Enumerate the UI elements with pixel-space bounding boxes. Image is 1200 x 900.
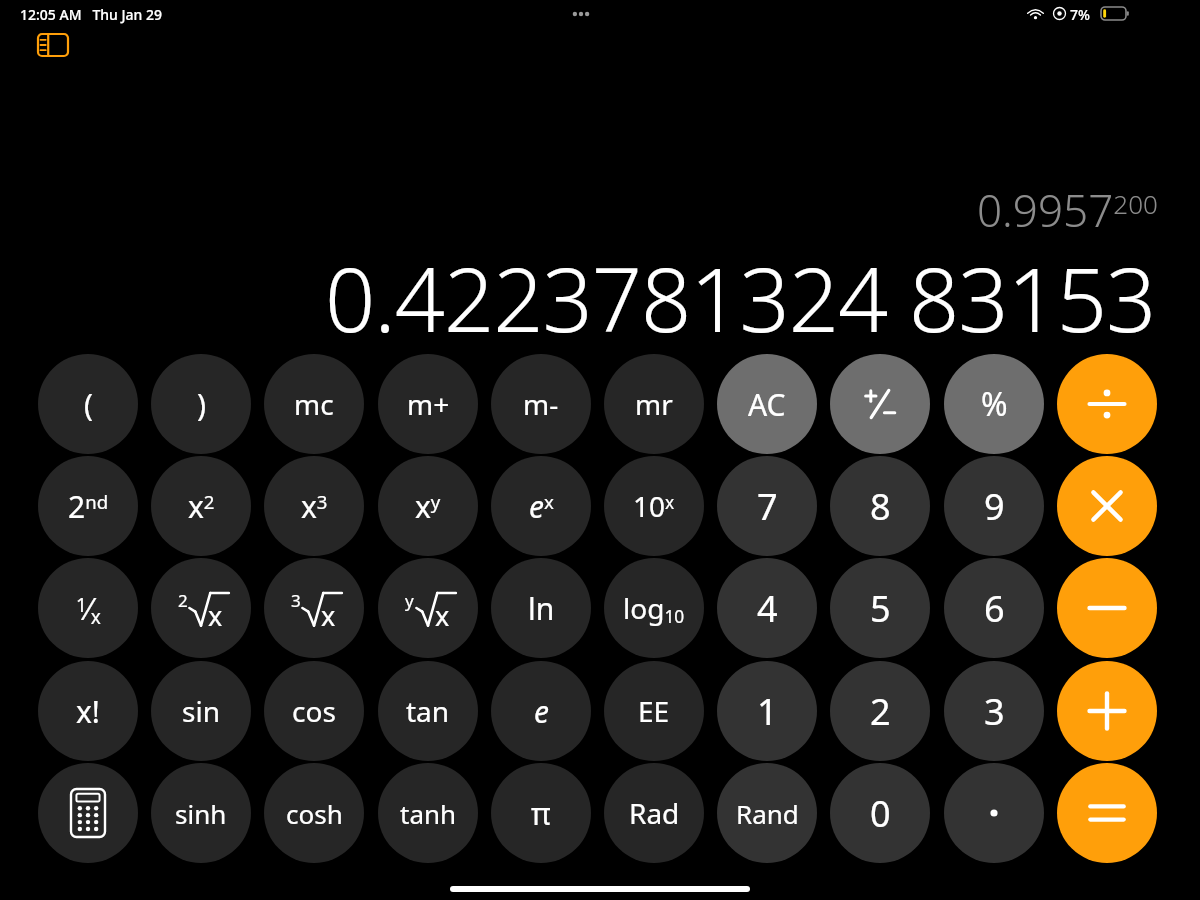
button[interactable]: One over x	[38, 558, 138, 658]
staticText: 7	[757, 482, 778, 531]
button[interactable]: Divide	[1057, 354, 1157, 454]
button[interactable]: mr	[604, 354, 704, 454]
staticText: 1	[757, 687, 778, 736]
button[interactable]: Rad	[604, 763, 704, 863]
staticText: m-	[523, 385, 559, 423]
staticText: (	[84, 384, 93, 425]
staticText: 0.9957200	[977, 180, 1158, 240]
staticText: 12:05 AM Thu Jan 29	[20, 5, 162, 24]
staticText: 5	[870, 584, 891, 633]
button[interactable]: m+	[378, 354, 478, 454]
staticText: sin	[182, 692, 220, 730]
button[interactable]: 0	[830, 763, 930, 863]
button[interactable]: 3	[944, 661, 1044, 761]
button[interactable]: (	[38, 354, 138, 454]
staticText: 2nd	[68, 486, 109, 527]
button[interactable]: 4	[717, 558, 817, 658]
button[interactable]: AC	[717, 354, 817, 454]
button[interactable]: x!	[38, 661, 138, 761]
staticText: sinh	[175, 796, 227, 831]
staticText: AC	[748, 384, 786, 425]
button[interactable]: 2	[830, 661, 930, 761]
button[interactable]: ln	[491, 558, 591, 658]
staticText: 7%	[1070, 5, 1090, 24]
staticText: x3	[301, 486, 328, 527]
button[interactable]: 8	[830, 456, 930, 556]
button[interactable]: x3	[264, 456, 364, 556]
button[interactable]: 7	[717, 456, 817, 556]
staticText: 3	[291, 589, 301, 612]
staticText: xy	[415, 486, 441, 527]
staticText: Rad	[629, 794, 680, 832]
staticText: EE	[638, 692, 670, 730]
staticText: 3	[984, 687, 1005, 736]
staticText: 0	[870, 789, 891, 838]
staticText: mr	[635, 385, 673, 423]
staticText: mc	[294, 385, 334, 423]
button[interactable]: sinh	[151, 763, 251, 863]
button[interactable]: Equals	[1057, 763, 1157, 863]
staticText: π	[531, 793, 551, 834]
staticText: tan	[406, 692, 450, 730]
staticText: )	[197, 384, 206, 425]
staticText: tanh	[400, 796, 457, 831]
staticText: y	[405, 589, 414, 612]
staticText: x	[435, 597, 450, 634]
button[interactable]: Plus	[1057, 661, 1157, 761]
button[interactable]: Y root	[378, 558, 478, 658]
button[interactable]: Decimal point	[944, 763, 1044, 863]
staticText: log10	[623, 589, 685, 628]
button[interactable]: Basic calculator	[38, 763, 138, 863]
button[interactable]: Plus minus	[830, 354, 930, 454]
button[interactable]: 10x	[604, 456, 704, 556]
staticText: cos	[292, 692, 336, 730]
button[interactable]: Square root	[151, 558, 251, 658]
staticText: ex	[529, 486, 554, 527]
button[interactable]: 6	[944, 558, 1044, 658]
staticText: %	[981, 382, 1008, 426]
button[interactable]: 2nd	[38, 456, 138, 556]
button[interactable]: 1	[717, 661, 817, 761]
button[interactable]: 9	[944, 456, 1044, 556]
button[interactable]: Show sidebar	[36, 32, 70, 58]
staticText: 9	[984, 482, 1005, 531]
button[interactable]: Cube root	[264, 558, 364, 658]
button[interactable]: xy	[378, 456, 478, 556]
staticText: e	[534, 691, 549, 732]
staticText: 8	[870, 482, 891, 531]
staticText: x!	[76, 691, 100, 732]
staticText: m+	[407, 385, 450, 423]
staticText: 2	[178, 589, 188, 612]
button[interactable]: e	[491, 661, 591, 761]
button[interactable]: m-	[491, 354, 591, 454]
button[interactable]: Minus	[1057, 558, 1157, 658]
staticText: x2	[188, 486, 215, 527]
button[interactable]: cosh	[264, 763, 364, 863]
button[interactable]: EE	[604, 661, 704, 761]
button[interactable]: Multiply	[1057, 456, 1157, 556]
button[interactable]: sin	[151, 661, 251, 761]
button[interactable]: %	[944, 354, 1044, 454]
staticText: Rand	[736, 796, 799, 831]
button[interactable]: )	[151, 354, 251, 454]
button[interactable]: log10	[604, 558, 704, 658]
staticText: 0.4223781324 83153	[325, 238, 1156, 358]
staticText: 4	[757, 584, 778, 633]
staticText: x	[208, 597, 223, 634]
button[interactable]: tan	[378, 661, 478, 761]
staticText: 1⁄x	[76, 588, 101, 629]
button[interactable]: mc	[264, 354, 364, 454]
staticText: ln	[528, 588, 555, 629]
staticText: 10x	[633, 487, 675, 525]
button[interactable]: π	[491, 763, 591, 863]
staticText: 2	[870, 687, 891, 736]
button[interactable]: 5	[830, 558, 930, 658]
button[interactable]: x2	[151, 456, 251, 556]
button[interactable]: cos	[264, 661, 364, 761]
button[interactable]: ex	[491, 456, 591, 556]
button[interactable]: Rand	[717, 763, 817, 863]
button[interactable]: tanh	[378, 763, 478, 863]
staticText: cosh	[286, 796, 343, 831]
staticText: 6	[984, 584, 1005, 633]
staticText: x	[321, 597, 336, 634]
